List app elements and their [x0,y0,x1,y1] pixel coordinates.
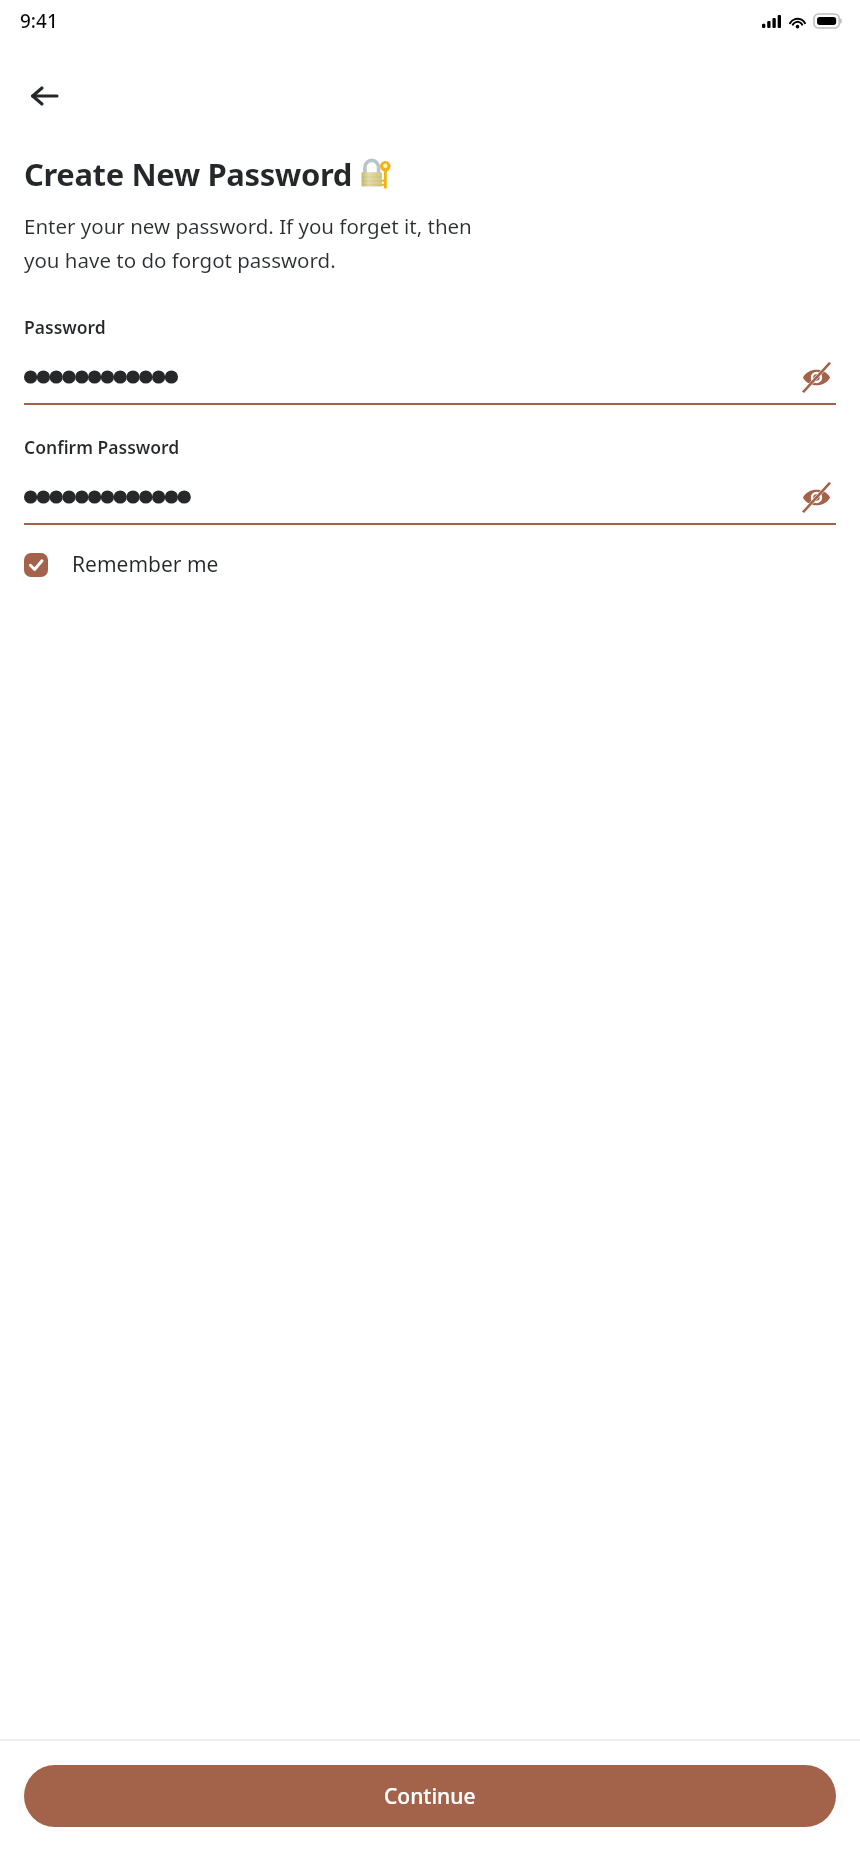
staticText: Password [24,315,106,339]
button[interactable]: Toggle password visibility [24,357,836,397]
button[interactable]: Toggle password visibility [796,357,836,397]
button[interactable]: Toggle password visibility [796,477,836,517]
staticText: 9:41 [20,8,58,34]
button[interactable]: Remember me [24,550,219,579]
button[interactable]: Toggle password visibility [24,477,836,517]
staticText: Enter your new password. If you forget i… [24,212,472,240]
button[interactable]: Continue [24,1765,836,1827]
staticText: Remember me [72,550,219,579]
staticText: Create New Password [24,153,353,195]
staticText: you have to do forgot password. [24,246,336,274]
staticText: Confirm Password [24,435,180,459]
staticText: Continue [384,1782,476,1811]
button[interactable]: Back [18,70,70,122]
